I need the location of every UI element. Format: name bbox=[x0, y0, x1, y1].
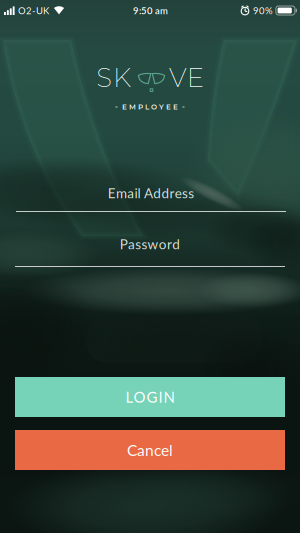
button[interactable]: Cancel bbox=[15, 430, 285, 470]
staticText: VE bbox=[169, 62, 204, 93]
button[interactable]: Email Address bbox=[16, 185, 286, 212]
staticText: SK bbox=[96, 62, 131, 93]
staticText: LOGIN bbox=[125, 388, 174, 406]
staticText: 90% bbox=[253, 5, 273, 16]
staticText: Email Address bbox=[108, 185, 194, 201]
staticText: 9:50 am bbox=[133, 5, 168, 16]
staticText: O2-UK bbox=[18, 5, 49, 16]
staticText: Cancel bbox=[127, 441, 173, 459]
button[interactable]: Password bbox=[15, 236, 285, 267]
button[interactable]: LOGIN bbox=[15, 377, 285, 417]
staticText: - E M P L O Y E E - bbox=[115, 102, 185, 111]
staticText: Password bbox=[120, 236, 180, 252]
